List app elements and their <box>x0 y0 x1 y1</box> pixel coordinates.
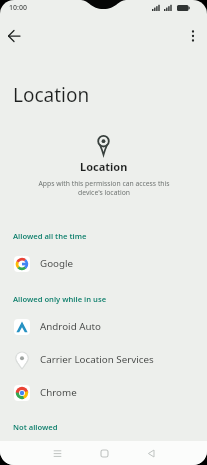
button[interactable] <box>138 441 164 465</box>
button[interactable] <box>91 441 117 465</box>
button[interactable]: Carrier Location Services <box>0 343 207 376</box>
button[interactable]: Google <box>0 247 207 280</box>
staticText: 10:00 <box>9 3 27 13</box>
button[interactable] <box>44 441 70 465</box>
staticText: Location <box>80 159 128 174</box>
button[interactable]: Chrome <box>0 376 207 409</box>
staticText: Not allowed <box>13 422 58 432</box>
button[interactable] <box>184 26 202 46</box>
staticText: Carrier Location Services <box>40 353 154 366</box>
staticText: Android Auto <box>40 320 101 333</box>
button[interactable] <box>4 26 24 46</box>
staticText: Chrome <box>40 386 77 399</box>
staticText: Apps with this permission can access thi… <box>38 179 170 197</box>
staticText: Location <box>13 82 90 108</box>
staticText: Google <box>40 257 74 270</box>
staticText: Allowed all the time <box>13 231 87 241</box>
button[interactable]: Android Auto <box>0 310 207 343</box>
staticText: Allowed only while in use <box>13 294 107 304</box>
